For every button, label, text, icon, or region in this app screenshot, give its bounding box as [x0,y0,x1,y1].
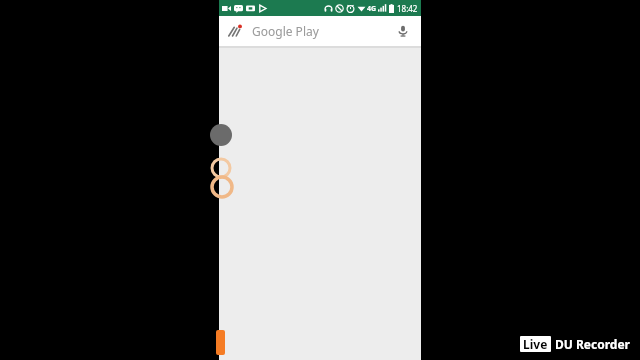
staticText: Google Play [252,23,319,39]
button[interactable]: Google Play [219,16,421,46]
staticText: 4G [367,4,377,14]
staticText: Live [523,336,548,352]
staticText: 18:42 [397,3,418,14]
button[interactable]: Voice search [394,22,412,40]
staticText: DU Recorder [555,336,630,352]
